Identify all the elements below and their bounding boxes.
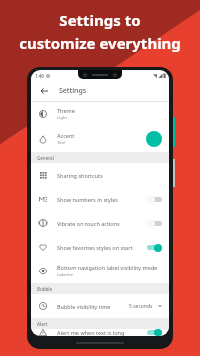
staticText: Teal <box>57 140 65 146</box>
button[interactable]: Show numbers in styles <box>31 187 169 211</box>
staticText: Settings to <box>59 10 141 30</box>
staticText: Show numbers in styles <box>57 196 143 203</box>
button[interactable] <box>147 243 162 252</box>
staticText: Theme <box>57 107 75 114</box>
button[interactable]: Accent <box>31 126 169 152</box>
staticText: Vibrate on touch actions <box>57 220 143 227</box>
staticText: Bubble visibility time <box>57 303 129 310</box>
staticText: Labeled <box>57 272 73 278</box>
staticText: customize everything <box>19 33 181 53</box>
button[interactable]: Bubble visibility time <box>31 294 169 318</box>
button[interactable]: Back <box>37 84 51 98</box>
button[interactable] <box>147 329 162 336</box>
staticText: Alert me when text is long <box>57 329 143 336</box>
staticText: Accent <box>57 132 75 139</box>
button[interactable]: Show favorites styles on start <box>31 235 169 259</box>
button[interactable] <box>147 219 162 228</box>
staticText: 5 seconds <box>129 303 153 310</box>
button[interactable]: Theme <box>31 102 169 126</box>
staticText: Light <box>57 115 67 121</box>
button[interactable]: Sharing shortcuts <box>31 163 169 187</box>
staticText: Settings <box>59 86 87 96</box>
button[interactable]: Bottom navigation label visibility mode <box>31 259 169 283</box>
button[interactable]: Alert me when text is long <box>31 329 169 336</box>
staticText: 1:49 <box>35 73 44 79</box>
staticText: Show favorites styles on start <box>57 244 143 251</box>
staticText: Bottom navigation label visibility mode <box>57 264 158 271</box>
staticText: Bubble <box>37 286 53 292</box>
button[interactable] <box>147 195 162 204</box>
staticText: Alert <box>37 321 48 327</box>
staticText: Sharing shortcuts <box>57 172 103 179</box>
staticText: General <box>37 155 54 161</box>
button[interactable]: Vibrate on touch actions <box>31 211 169 235</box>
